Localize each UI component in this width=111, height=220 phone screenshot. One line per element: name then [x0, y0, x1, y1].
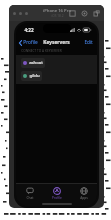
- staticText: ashoat: [29, 60, 43, 66]
- staticText: iPhone 16 Pro: [43, 8, 71, 14]
- staticText: 4:22: [24, 27, 34, 33]
- staticText: iOS 18.2: [51, 14, 64, 18]
- button[interactable]: Profile: [16, 37, 41, 48]
- staticText: Keyservers: [43, 39, 70, 46]
- button[interactable]: ashoat: [21, 58, 45, 68]
- button[interactable]: Record: [81, 10, 88, 17]
- button[interactable]: Rotate: [93, 10, 100, 17]
- staticText: Profile: [23, 39, 38, 46]
- button[interactable]: Apps: [70, 184, 97, 201]
- staticText: Chat: [26, 196, 34, 200]
- staticText: gildu: [29, 73, 40, 79]
- button[interactable]: gildu: [21, 71, 42, 81]
- staticText: Edit: [84, 39, 93, 45]
- staticText: Apps: [80, 196, 88, 200]
- staticText: CONNECT TO A KEYSERVER: [21, 49, 62, 53]
- button[interactable]: Chat: [16, 184, 43, 201]
- button[interactable]: Edit: [80, 37, 97, 47]
- staticText: Profile: [52, 196, 62, 200]
- button[interactable]: Screenshot: [69, 10, 76, 17]
- button[interactable]: Profile: [43, 184, 70, 201]
